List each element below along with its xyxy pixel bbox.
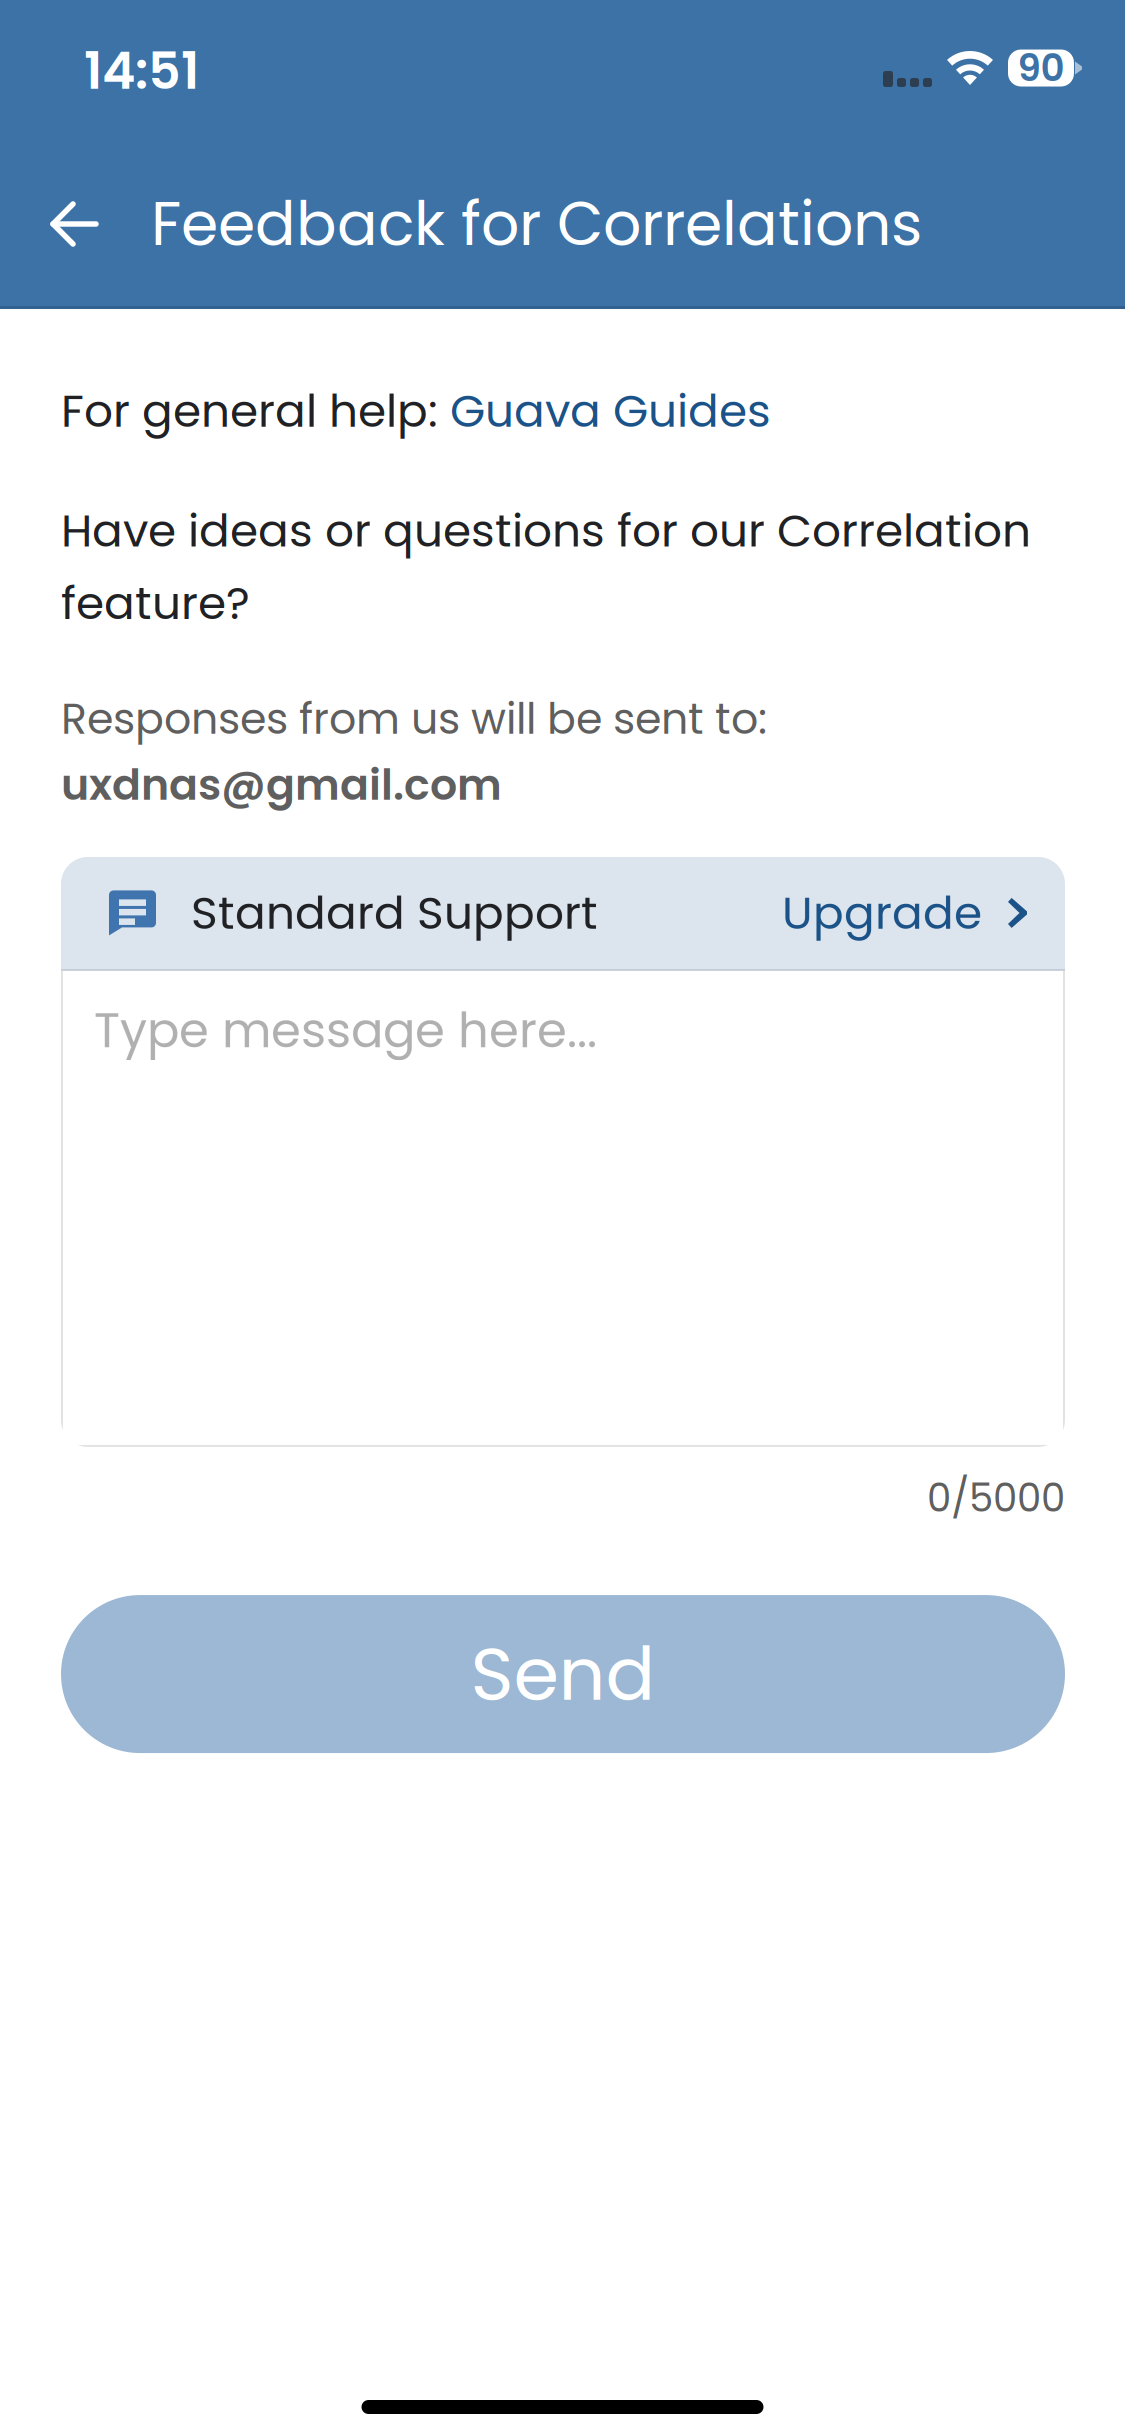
staticText: Type message here...	[94, 997, 597, 1064]
staticText: For general help:	[61, 379, 450, 443]
button[interactable]: Guava Guides	[450, 379, 771, 443]
staticText: 14:51	[84, 35, 199, 106]
button[interactable]: Standard Support	[61, 857, 1065, 969]
staticText: 90	[1017, 42, 1064, 94]
staticText: Standard Support	[191, 881, 598, 945]
staticText: Send	[470, 1623, 655, 1725]
staticText: Responses from us will be sent to:	[61, 689, 767, 749]
staticText: uxdnas@gmail.com	[61, 755, 502, 815]
staticText: Guava Guides	[450, 379, 771, 443]
staticText: Have ideas or questions for our Correlat…	[61, 499, 1031, 635]
staticText: Feedback for Correlations	[151, 182, 922, 266]
staticText: 0/5000	[927, 1471, 1065, 1525]
staticText: Upgrade	[782, 881, 982, 945]
button[interactable]: Back	[0, 174, 151, 274]
button[interactable]: Send	[61, 1595, 1065, 1753]
